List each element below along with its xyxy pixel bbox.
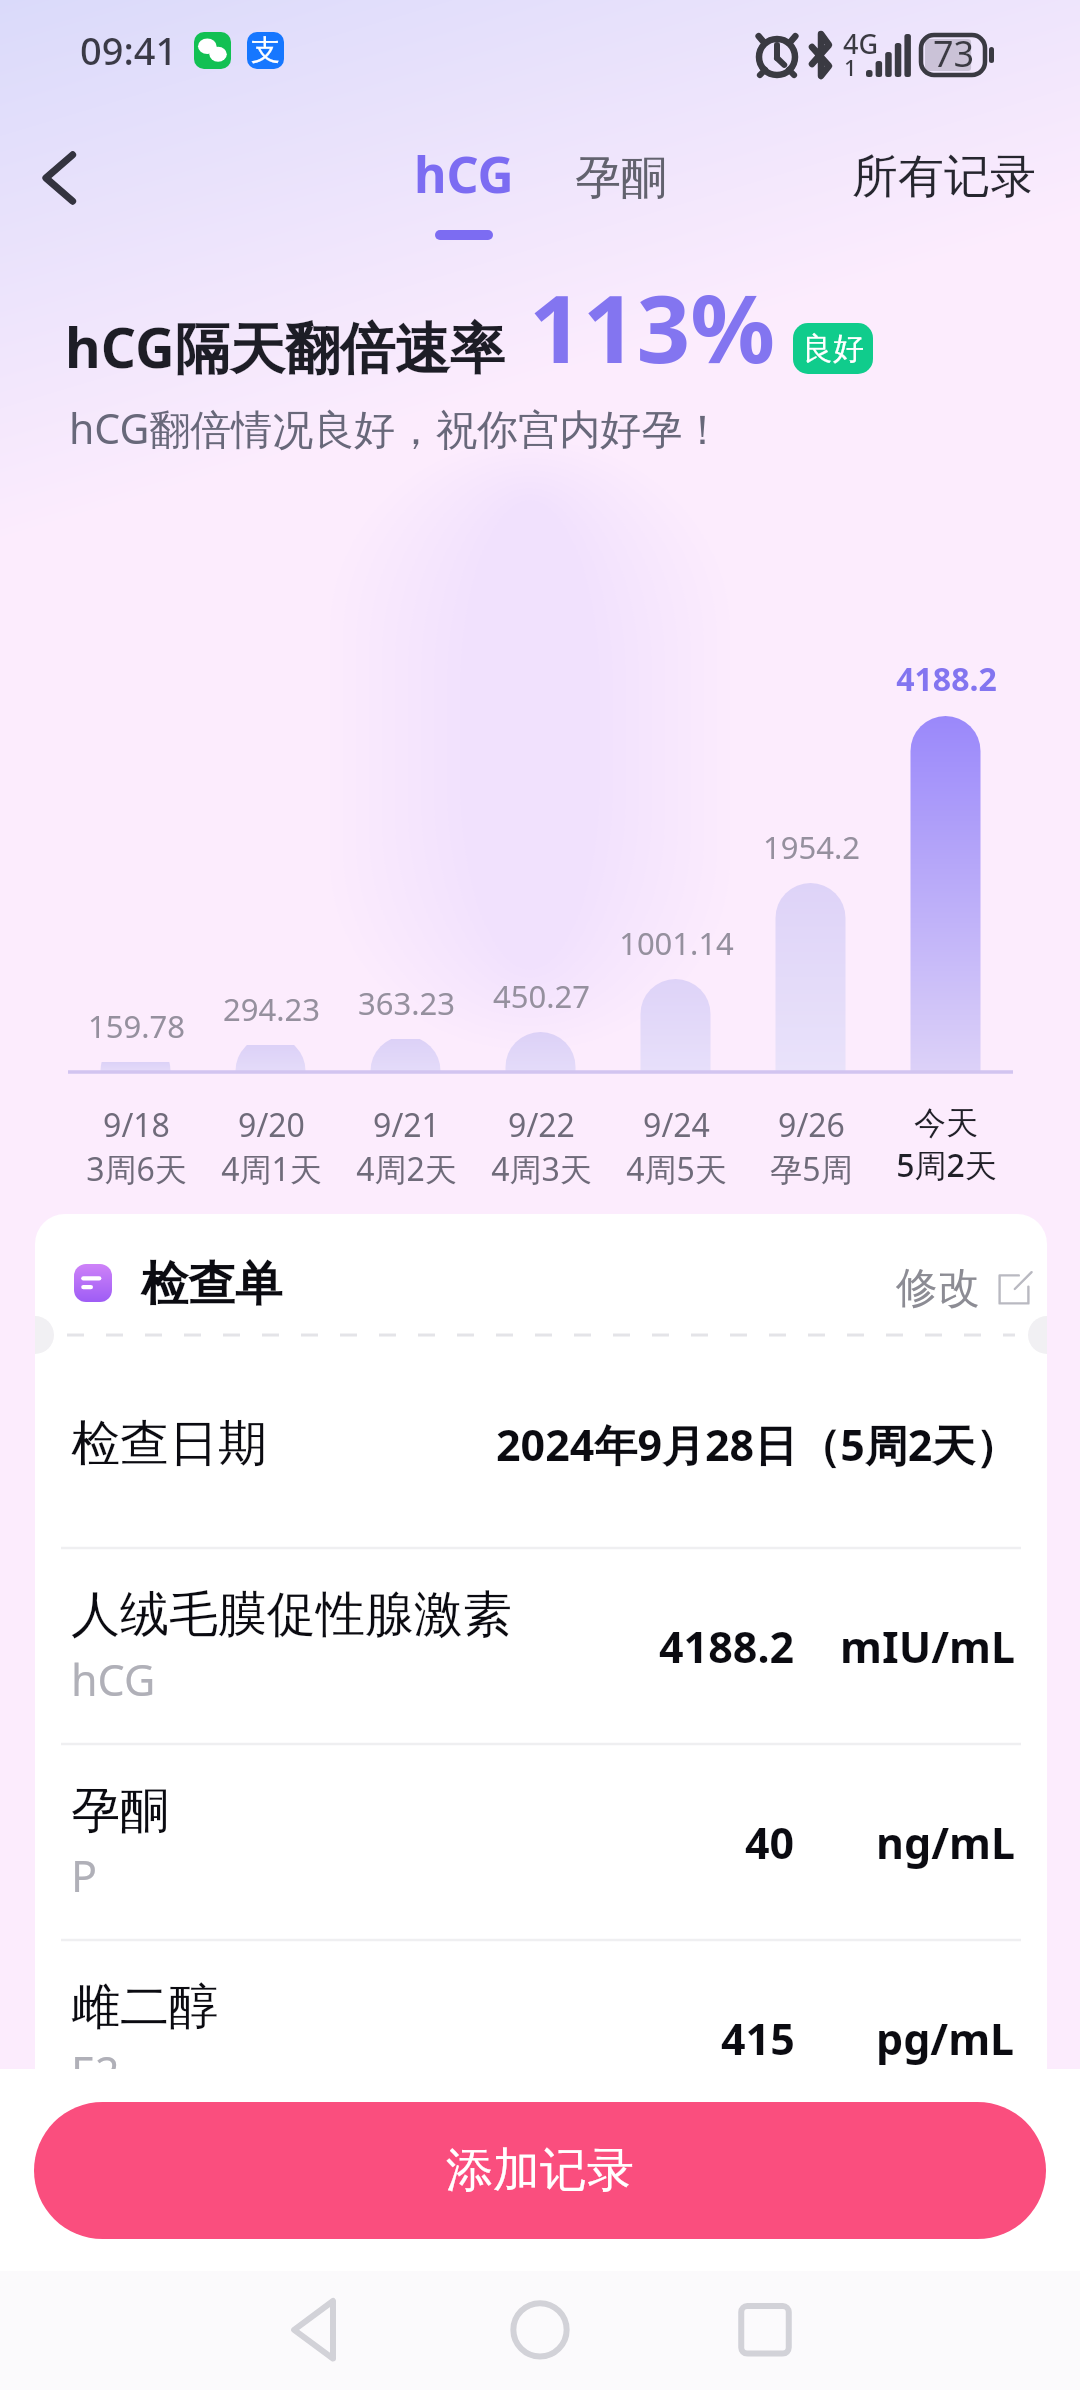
staticText: 294.23 bbox=[223, 988, 320, 1030]
staticText: 1954.2 bbox=[763, 826, 860, 868]
staticText: 1001.14 bbox=[619, 922, 734, 964]
staticText: 4周3天 bbox=[491, 1147, 592, 1191]
staticText: 363.23 bbox=[358, 982, 455, 1024]
staticText: 人绒毛膜促性腺激素 bbox=[71, 1584, 512, 1646]
button[interactable]: 所有记录 bbox=[840, 140, 1048, 214]
staticText: 添加记录 bbox=[446, 2141, 634, 2200]
staticText: 检查日期 bbox=[71, 1413, 267, 1475]
staticText: P bbox=[71, 1846, 98, 1905]
staticText: 3周6天 bbox=[86, 1147, 187, 1191]
staticText: 9/18 bbox=[103, 1103, 170, 1147]
button[interactable]: 人绒毛膜促性腺激素 bbox=[35, 1548, 1047, 1744]
staticText: 450.27 bbox=[493, 975, 590, 1017]
staticText: 4G bbox=[843, 25, 879, 62]
staticText: 415 bbox=[721, 2009, 795, 2068]
button[interactable]: 修改 bbox=[890, 1256, 1040, 1321]
staticText: ng/mL bbox=[876, 1813, 1015, 1872]
staticText: 2024年9月28日（5周2天） bbox=[496, 1415, 1019, 1474]
staticText: 9/21 bbox=[373, 1103, 440, 1147]
staticText: 良好 bbox=[802, 329, 864, 368]
staticText: 5周2天 bbox=[896, 1143, 997, 1187]
staticText: 所有记录 bbox=[852, 148, 1036, 206]
staticText: pg/mL bbox=[876, 2009, 1015, 2068]
staticText: hCG bbox=[71, 1650, 156, 1709]
staticText: 73 bbox=[933, 29, 975, 78]
button[interactable]: 添加记录 bbox=[34, 2102, 1046, 2239]
staticText: 4188.2 bbox=[659, 1617, 795, 1676]
staticText: 9/20 bbox=[238, 1103, 305, 1147]
staticText: hCG隔天翻倍速率 bbox=[65, 309, 505, 384]
staticText: hCG翻倍情况良好，祝你宫内好孕！ bbox=[69, 400, 724, 456]
staticText: 9/26 bbox=[778, 1103, 845, 1147]
staticText: 今天 bbox=[914, 1103, 978, 1143]
staticText: 孕5周 bbox=[770, 1147, 853, 1191]
staticText: 113% bbox=[529, 263, 776, 391]
staticText: 雌二醇 bbox=[71, 1976, 218, 2038]
staticText: 检查单 bbox=[141, 1255, 282, 1314]
staticText: 159.78 bbox=[88, 1005, 185, 1047]
staticText: 1 bbox=[844, 52, 857, 82]
staticText: 孕酮 bbox=[575, 149, 667, 207]
staticText: 4188.2 bbox=[896, 657, 997, 701]
staticText: 修改 bbox=[896, 1262, 980, 1315]
button[interactable]: Back bbox=[16, 133, 106, 223]
button[interactable]: hCG bbox=[396, 136, 532, 244]
button[interactable]: 雌二醇 bbox=[35, 1940, 1047, 2069]
staticText: 4周1天 bbox=[221, 1147, 322, 1191]
staticText: 孕酮 bbox=[71, 1780, 169, 1842]
staticText: hCG bbox=[414, 140, 514, 208]
staticText: mIU/mL bbox=[840, 1617, 1015, 1676]
staticText: 4周2天 bbox=[356, 1147, 457, 1191]
staticText: 支 bbox=[251, 32, 280, 69]
button[interactable]: 孕酮 bbox=[35, 1744, 1047, 1940]
staticText: 09:41 bbox=[80, 24, 178, 76]
staticText: 4周5天 bbox=[626, 1147, 727, 1191]
staticText: E2 bbox=[71, 2042, 120, 2069]
staticText: 9/22 bbox=[508, 1103, 575, 1147]
button[interactable]: 检查日期 bbox=[35, 1340, 1047, 1548]
button[interactable]: 孕酮 bbox=[557, 141, 685, 215]
staticText: 40 bbox=[745, 1813, 795, 1872]
staticText: 9/24 bbox=[643, 1103, 710, 1147]
